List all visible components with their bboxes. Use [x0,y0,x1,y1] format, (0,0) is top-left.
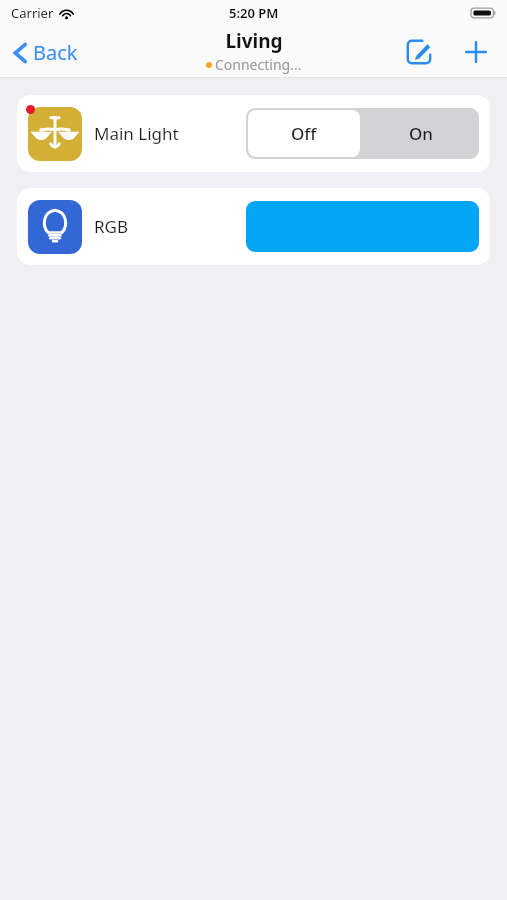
staticText: Connecting... [215,55,302,74]
button[interactable]: Back [9,35,82,70]
button[interactable]: Off [248,110,360,157]
staticText: 5:20 PM [229,4,279,22]
button[interactable]: Color brightness slider [246,201,479,252]
staticText: Main Light [94,122,179,145]
button[interactable]: Main Light [17,95,490,172]
button[interactable]: On [362,108,479,159]
staticText: Back [33,39,78,66]
button[interactable]: Edit [399,32,439,72]
button[interactable]: RGB [17,188,490,265]
button[interactable]: Add [457,33,495,71]
staticText: Off [291,122,317,145]
staticText: On [409,122,433,145]
staticText: Carrier [11,4,54,22]
staticText: Living [225,28,283,54]
staticText: RGB [94,215,128,238]
